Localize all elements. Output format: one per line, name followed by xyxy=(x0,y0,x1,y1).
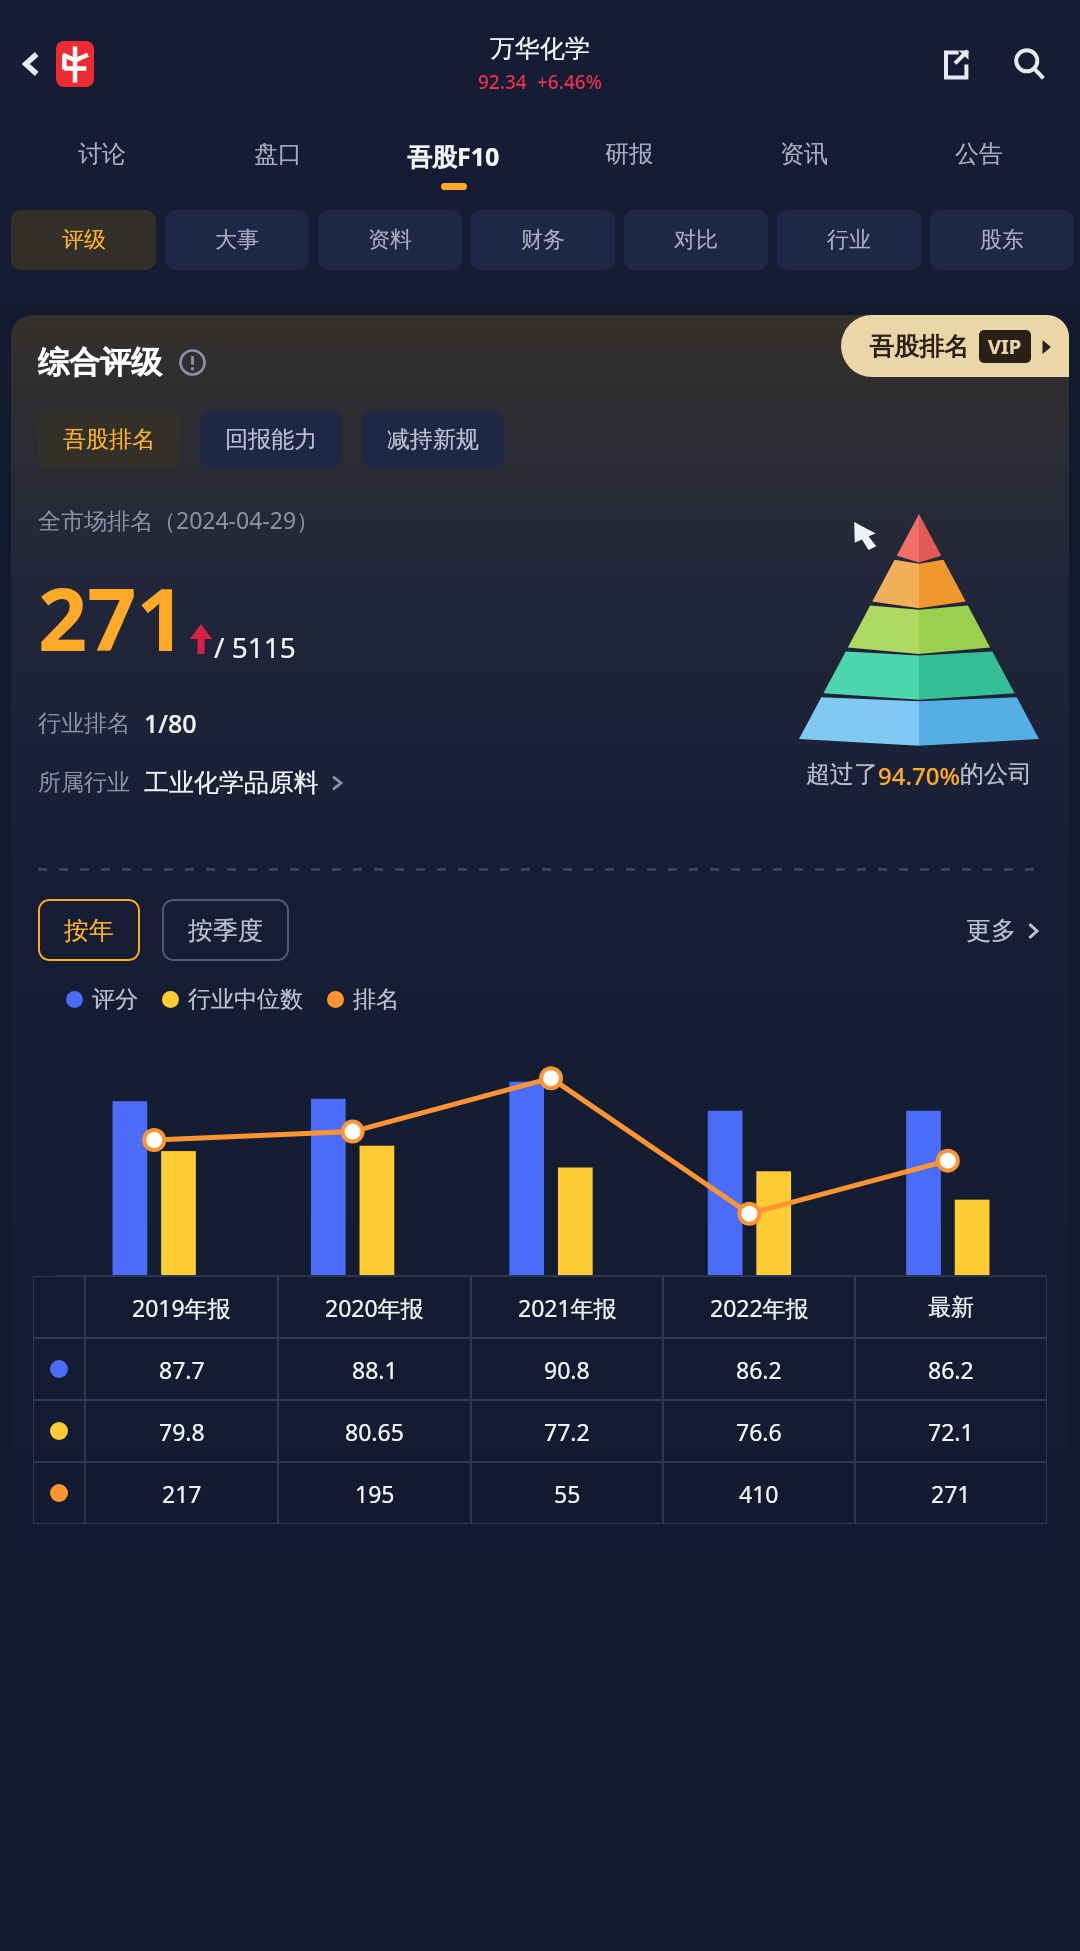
staticText: 工业化学品原料 xyxy=(144,767,319,798)
button[interactable]: 综合评级 xyxy=(38,343,206,382)
button[interactable]: 吾股排名 xyxy=(841,315,1069,377)
staticText: 资料 xyxy=(368,226,412,254)
staticText: 55 xyxy=(554,1478,581,1509)
button[interactable]: 回报能力 xyxy=(200,411,342,468)
staticText: / 5115 xyxy=(214,628,296,666)
staticText: 研报 xyxy=(605,139,653,169)
staticText: 87.7 xyxy=(159,1354,205,1385)
staticText: 94.70% xyxy=(878,759,960,792)
staticText: 所属行业 xyxy=(38,768,130,797)
staticText: 195 xyxy=(355,1478,395,1509)
staticText: 86.2 xyxy=(736,1354,782,1385)
staticText: 最新 xyxy=(928,1293,974,1322)
button[interactable]: 吾股F10 xyxy=(366,127,541,210)
staticText: 排名 xyxy=(353,985,399,1014)
staticText: 评分 xyxy=(92,985,138,1014)
staticText: 86.2 xyxy=(928,1354,974,1385)
staticText: 公告 xyxy=(955,139,1003,169)
button[interactable]: 资料 xyxy=(318,210,462,270)
staticText: 的公司 xyxy=(960,759,1032,789)
staticText: 88.1 xyxy=(352,1354,398,1385)
staticText: 1/80 xyxy=(144,706,197,740)
staticText: 回报能力 xyxy=(225,425,317,454)
staticText: 80.65 xyxy=(345,1416,404,1447)
button[interactable]: 公告 xyxy=(891,127,1066,210)
staticText: 万华化学 xyxy=(490,33,590,64)
button[interactable]: 按年 xyxy=(38,899,140,961)
staticText: 72.1 xyxy=(928,1416,974,1447)
button[interactable]: 行业 xyxy=(777,210,921,270)
staticText: 行业 xyxy=(827,226,871,254)
button[interactable]: 研报 xyxy=(541,127,716,210)
staticText: 90.8 xyxy=(544,1354,590,1385)
staticText: 79.8 xyxy=(159,1416,205,1447)
button[interactable]: 评级 xyxy=(11,210,156,270)
staticText: 2020年报 xyxy=(325,1292,424,1323)
staticText: 大事 xyxy=(215,226,259,254)
button[interactable]: 按季度 xyxy=(162,899,289,961)
staticText: 综合评级 xyxy=(38,343,162,382)
staticText: 行业排名 xyxy=(38,709,130,738)
button[interactable]: 吾股排名 xyxy=(38,411,180,468)
staticText: VIP xyxy=(988,333,1022,360)
staticText: 对比 xyxy=(674,226,718,254)
button[interactable]: 股东 xyxy=(930,210,1074,270)
button[interactable]: Logo xyxy=(56,41,94,87)
staticText: 讨论 xyxy=(78,139,126,169)
staticText: 2019年报 xyxy=(132,1292,231,1323)
staticText: 271 xyxy=(38,559,186,676)
button[interactable]: 资讯 xyxy=(716,127,891,210)
staticText: 更多 xyxy=(966,915,1016,946)
staticText: +6.46% xyxy=(537,69,602,95)
staticText: 92.34 xyxy=(478,69,527,95)
button[interactable]: 财务 xyxy=(471,210,615,270)
button[interactable]: 对比 xyxy=(624,210,768,270)
staticText: 271 xyxy=(931,1478,971,1509)
staticText: 资讯 xyxy=(780,139,828,169)
button[interactable]: 减持新规 xyxy=(362,411,504,468)
staticText: 217 xyxy=(162,1478,202,1509)
staticText: 超过了 xyxy=(806,759,878,789)
staticText: 2022年报 xyxy=(710,1292,809,1323)
staticText: 按季度 xyxy=(188,915,263,946)
staticText: 410 xyxy=(739,1478,779,1509)
staticText: 评级 xyxy=(62,226,106,254)
staticText: 吾股排名 xyxy=(869,331,969,362)
staticText: 吾股F10 xyxy=(407,139,500,173)
staticText: 2021年报 xyxy=(518,1292,617,1323)
button[interactable]: Back xyxy=(6,38,58,90)
staticText: 盘口 xyxy=(254,139,302,169)
staticText: 77.2 xyxy=(544,1416,590,1447)
button[interactable]: 盘口 xyxy=(190,127,366,210)
staticText: 按年 xyxy=(64,915,114,946)
staticText: 财务 xyxy=(521,226,565,254)
staticText: 全市场排名（2024-04-29） xyxy=(38,504,320,535)
button[interactable]: 所属行业 xyxy=(38,767,345,798)
staticText: 行业中位数 xyxy=(188,985,303,1014)
staticText: 76.6 xyxy=(736,1416,782,1447)
staticText: 吾股排名 xyxy=(63,425,155,454)
button[interactable]: Search xyxy=(1000,35,1058,93)
staticText: 股东 xyxy=(980,226,1024,254)
button[interactable]: 更多 xyxy=(966,915,1042,946)
staticText: 减持新规 xyxy=(387,425,479,454)
button[interactable]: Share xyxy=(928,37,982,91)
button[interactable]: 大事 xyxy=(165,210,309,270)
button[interactable]: 讨论 xyxy=(14,127,190,210)
